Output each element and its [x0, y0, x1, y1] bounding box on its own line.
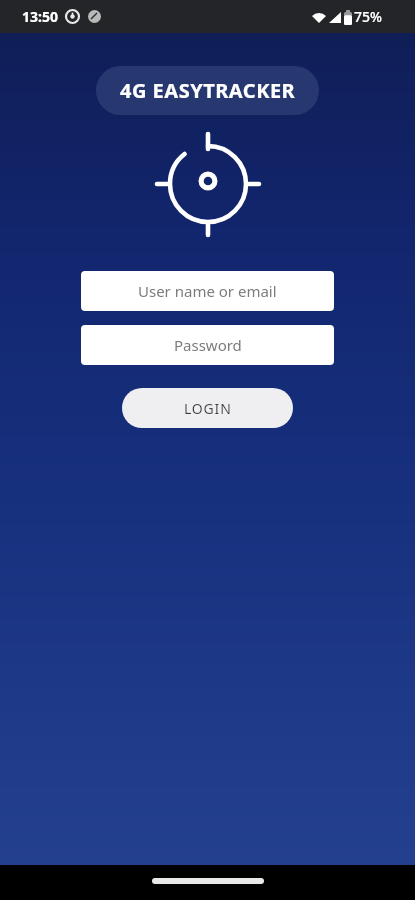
button[interactable]: LOGIN [122, 388, 293, 428]
button[interactable]: User name or email [81, 271, 334, 311]
staticText: 4G EASYTRACKER [120, 77, 296, 104]
staticText: LOGIN [184, 399, 232, 418]
staticText: Password [174, 335, 242, 355]
staticText: 13:50 [22, 7, 58, 26]
button[interactable]: Password [81, 325, 334, 365]
button[interactable]: 4G EASYTRACKER [96, 66, 319, 115]
staticText: User name or email [138, 281, 277, 301]
staticText: 75% [354, 7, 382, 26]
